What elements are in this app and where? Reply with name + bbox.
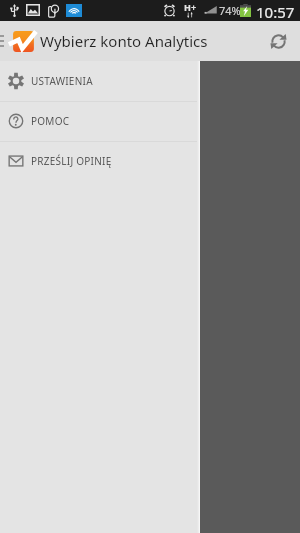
staticText: H+: [184, 1, 197, 13]
staticText: POMOC: [31, 114, 70, 128]
button[interactable]: USTAWIENIA: [0, 61, 200, 101]
staticText: USTAWIENIA: [31, 74, 93, 88]
staticText: 74%: [219, 3, 241, 18]
button[interactable]: Navigation menu: [0, 21, 11, 61]
staticText: 10:57: [256, 2, 295, 22]
button[interactable]: POMOC: [0, 101, 200, 141]
button[interactable]: PRZEŚLIJ OPINIĘ: [0, 141, 200, 181]
button[interactable]: Refresh: [263, 26, 293, 56]
staticText: Wybierz konto Analytics: [40, 31, 208, 51]
staticText: PRZEŚLIJ OPINIĘ: [31, 154, 112, 168]
